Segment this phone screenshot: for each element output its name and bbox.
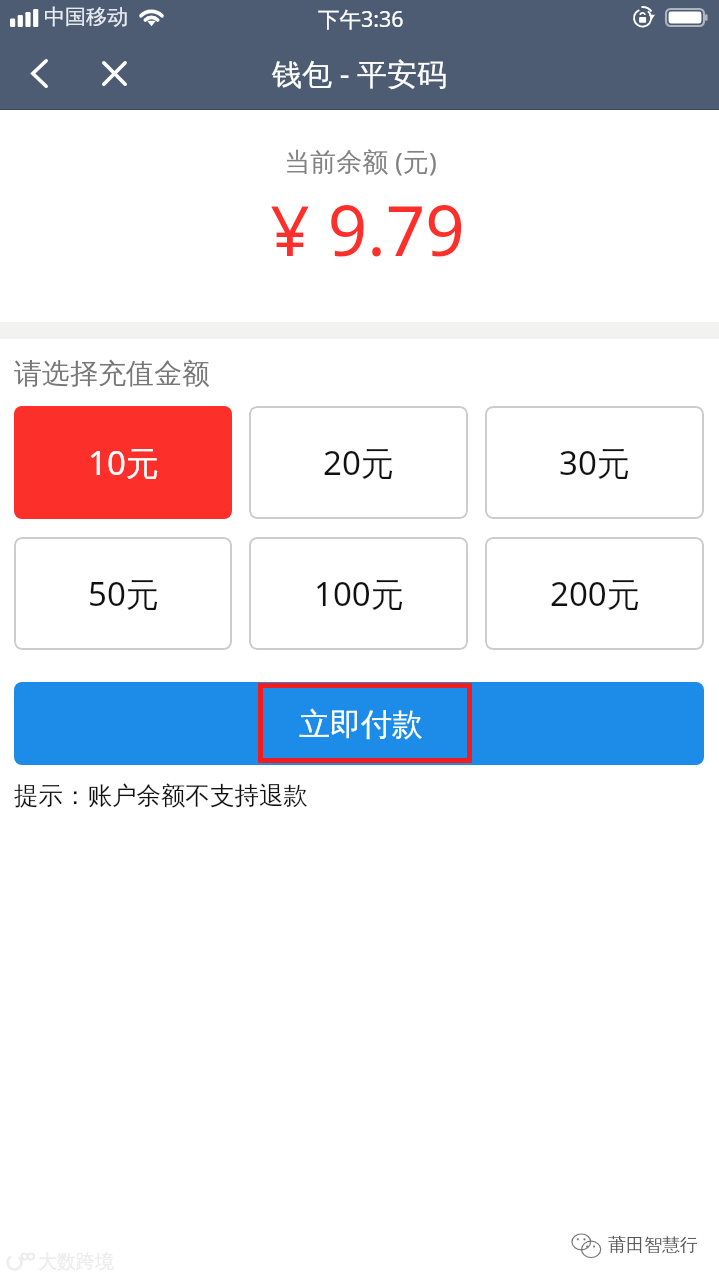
staticText: 20元 — [323, 440, 394, 485]
staticText: 10元 — [88, 440, 159, 485]
button[interactable]: 立即付款 — [14, 682, 704, 765]
staticText: 50元 — [88, 571, 159, 616]
staticText: 下午3:36 — [318, 4, 404, 33]
staticText: 莆田智慧行 — [608, 1234, 698, 1257]
button[interactable]: 20元 — [249, 406, 468, 519]
staticText: ¥ 9.79 — [8, 182, 719, 276]
staticText: 请选择充值金额 — [14, 356, 210, 391]
button[interactable]: 50元 — [14, 537, 232, 650]
button[interactable]: 30元 — [485, 406, 704, 519]
staticText: 大数跨境 — [38, 1250, 114, 1274]
button[interactable]: 10元 — [14, 406, 232, 519]
button[interactable]: 200元 — [485, 537, 704, 650]
staticText: 200元 — [550, 571, 640, 616]
staticText: 提示：账户余额不支持退款 — [14, 780, 308, 811]
staticText: 钱包 - 平安码 — [272, 53, 448, 94]
button[interactable]: Close — [78, 41, 150, 105]
button[interactable]: 100元 — [249, 537, 468, 650]
staticText: 当前余额 (元) — [1, 143, 719, 179]
button[interactable]: Back — [10, 41, 68, 105]
staticText: 30元 — [559, 440, 630, 485]
staticText: 中国移动 — [44, 4, 128, 30]
staticText: 立即付款 — [299, 705, 423, 744]
staticText: 100元 — [314, 571, 404, 616]
